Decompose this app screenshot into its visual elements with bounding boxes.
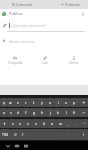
button[interactable]: p	[70, 98, 78, 107]
button[interactable]: a	[0, 108, 7, 117]
staticText: h	[41, 111, 43, 115]
staticText: n	[51, 122, 53, 126]
button[interactable]: .	[72, 119, 80, 128]
button[interactable]: Up	[80, 119, 88, 128]
button[interactable]: b	[40, 119, 48, 128]
button[interactable]: Evento	[59, 52, 88, 74]
staticText: e	[17, 101, 19, 105]
button[interactable]: Cancelar	[0, 0, 38, 9]
staticText: /	[22, 133, 24, 137]
staticText: y	[41, 101, 43, 105]
button[interactable]: Publicar	[61, 0, 88, 9]
button[interactable]: Backspace	[78, 98, 88, 107]
button[interactable]: f	[22, 108, 30, 117]
button[interactable]: ?123	[0, 129, 11, 140]
staticText: l	[66, 111, 67, 115]
staticText: Evento	[69, 61, 79, 65]
button[interactable]: Público	[0, 9, 77, 18]
button[interactable]: s	[7, 108, 14, 117]
staticText: Cancelar	[16, 2, 33, 7]
button[interactable]: h	[38, 108, 46, 117]
staticText: ?123	[2, 133, 9, 137]
button[interactable]: ,	[64, 119, 72, 128]
button[interactable]: e	[14, 98, 22, 107]
button[interactable]: c	[24, 119, 32, 128]
button[interactable]: Voice input	[78, 129, 88, 140]
staticText: q	[3, 101, 5, 105]
button[interactable]: q	[0, 98, 7, 107]
staticText: c	[27, 122, 29, 126]
staticText: Público	[9, 11, 23, 16]
button[interactable]: /	[19, 129, 26, 140]
button[interactable]: y	[38, 98, 46, 107]
button[interactable]: Recents	[21, 141, 30, 150]
button[interactable]: g	[30, 108, 38, 117]
button[interactable]: Emoji	[11, 129, 19, 140]
button[interactable]: x	[16, 119, 24, 128]
staticText: Añadir ubicación	[9, 39, 35, 43]
button[interactable]: o	[62, 98, 70, 107]
button[interactable]: r	[22, 98, 30, 107]
button[interactable]: Fotografía	[0, 52, 30, 74]
staticText: x	[19, 122, 21, 126]
staticText: p	[73, 101, 75, 105]
staticText: s	[10, 111, 12, 115]
staticText: .	[76, 122, 77, 126]
button[interactable]: Enter	[78, 108, 88, 117]
staticText: m	[59, 122, 62, 126]
button[interactable]: i	[54, 98, 62, 107]
button[interactable]: Comma	[64, 129, 71, 140]
staticText: Link	[42, 61, 48, 65]
staticText: d	[17, 111, 19, 115]
staticText: j	[50, 111, 51, 115]
button[interactable]: n	[48, 119, 56, 128]
button[interactable]: z	[9, 119, 16, 128]
button[interactable]: Añadir ubicación	[0, 36, 88, 45]
staticText: ¿Qué estás pensando?	[11, 23, 46, 27]
button[interactable]: Link	[30, 52, 59, 74]
button[interactable]: Shift	[0, 119, 9, 128]
staticText: ,	[68, 122, 69, 126]
button[interactable]: v	[32, 119, 40, 128]
button[interactable]: m	[56, 119, 64, 128]
staticText: r	[25, 101, 27, 105]
staticText: u	[49, 101, 51, 105]
staticText: f	[25, 111, 27, 115]
staticText: i	[58, 101, 59, 105]
staticText: a	[3, 111, 5, 115]
button[interactable]: w	[7, 98, 14, 107]
button[interactable]: k	[54, 108, 62, 117]
staticText: g	[33, 111, 35, 115]
staticText: ñ	[73, 111, 75, 115]
staticText: z	[12, 122, 14, 126]
button[interactable]: Back	[3, 141, 12, 150]
button[interactable]: Home	[12, 141, 21, 150]
button[interactable]: j	[46, 108, 54, 117]
staticText: w	[9, 101, 12, 105]
staticText: v	[35, 122, 37, 126]
staticText: o	[65, 101, 67, 105]
button[interactable]: Period	[71, 129, 78, 140]
button[interactable]: t	[30, 98, 38, 107]
staticText: b	[43, 122, 45, 126]
button[interactable]: d	[14, 108, 22, 117]
button[interactable]: ñ	[70, 108, 78, 117]
button[interactable]: l	[62, 108, 70, 117]
staticText: Publicar	[65, 2, 81, 7]
button[interactable]: u	[46, 98, 54, 107]
staticText: t	[33, 101, 35, 105]
button[interactable]: Add people	[77, 9, 88, 18]
staticText: k	[57, 111, 59, 115]
staticText: Fotografía	[8, 61, 23, 65]
